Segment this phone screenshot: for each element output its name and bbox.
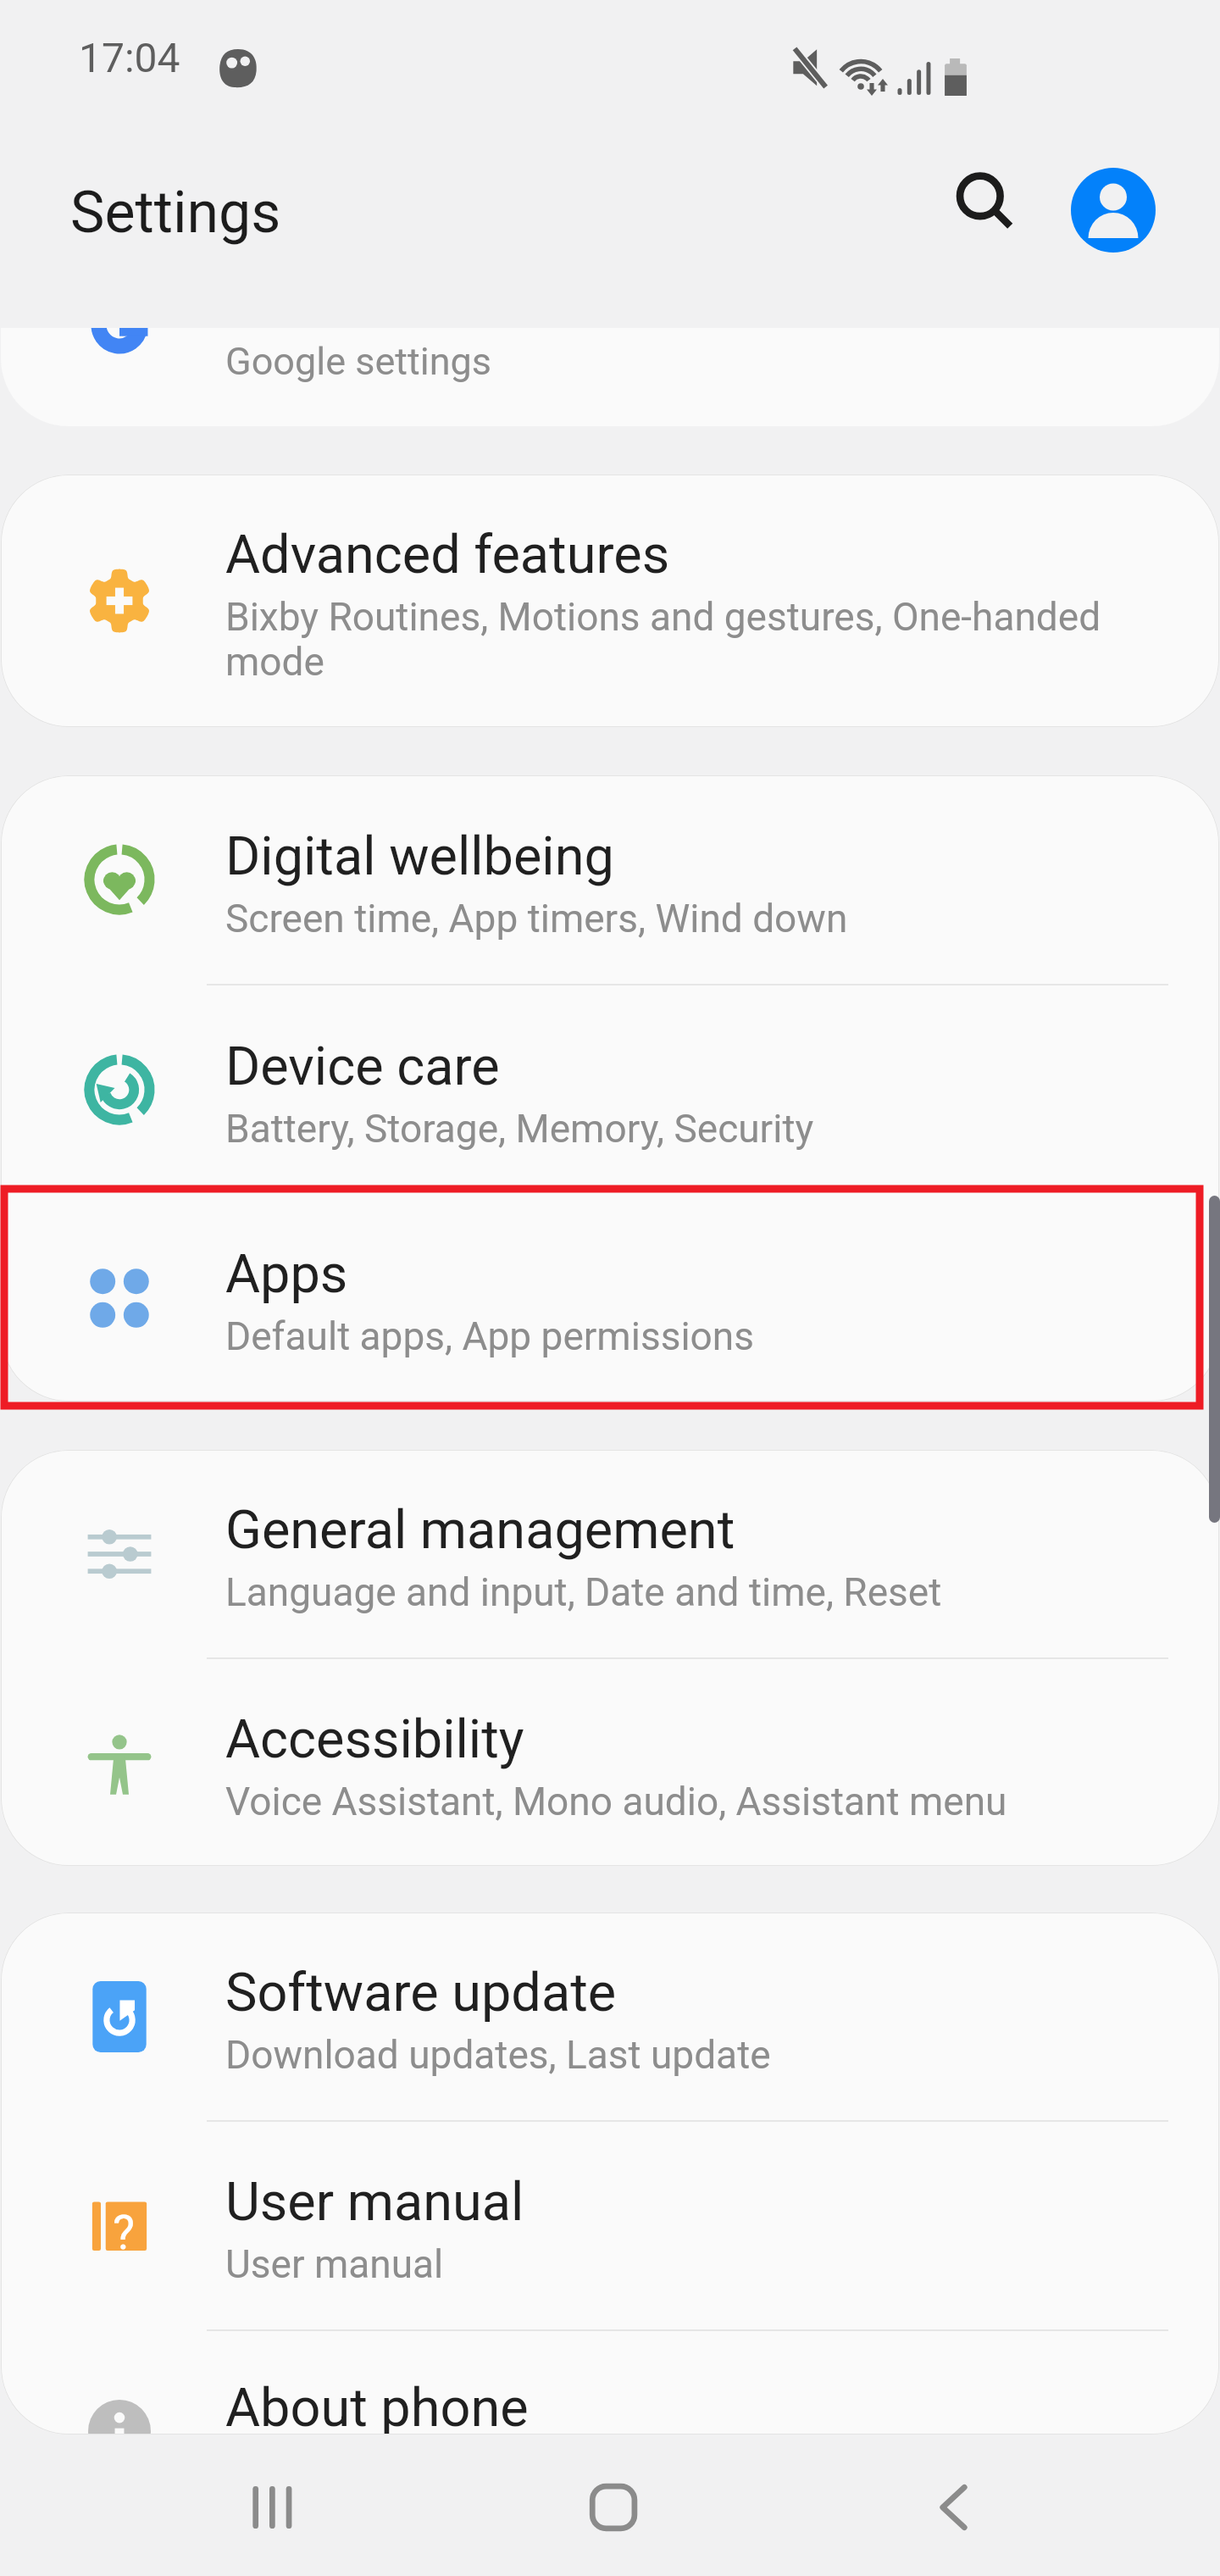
staticText: Bixby Routines, Motions and gestures, On… bbox=[225, 594, 1111, 685]
staticText: Advanced features bbox=[225, 524, 670, 586]
button[interactable]: Account bbox=[1071, 168, 1156, 253]
button[interactable]: Accessibility bbox=[1, 1659, 1219, 1866]
button[interactable]: General management bbox=[1, 1450, 1219, 1657]
staticText: User manual bbox=[225, 2171, 524, 2234]
staticText: General management bbox=[225, 1499, 735, 1562]
button[interactable]: Google settings bbox=[1, 328, 1219, 426]
button[interactable]: Apps bbox=[1, 1194, 1219, 1402]
staticText: Accessibility bbox=[225, 1708, 524, 1771]
button[interactable]: Digital wellbeing bbox=[1, 775, 1219, 984]
staticText: Battery, Storage, Memory, Security bbox=[225, 1106, 814, 1152]
staticText: Settings bbox=[70, 179, 281, 247]
staticText: 17:04 bbox=[79, 34, 180, 81]
staticText: Google settings bbox=[225, 339, 492, 384]
staticText: Apps bbox=[225, 1243, 348, 1306]
staticText: Default apps, App permissions bbox=[225, 1313, 754, 1359]
button[interactable]: Device care bbox=[1, 985, 1219, 1194]
button[interactable]: Advanced features bbox=[1, 475, 1219, 727]
staticText: Digital wellbeing bbox=[225, 825, 614, 888]
staticText: Voice Assistant, Mono audio, Assistant m… bbox=[225, 1779, 1007, 1824]
button[interactable]: About phone bbox=[1, 2331, 1219, 2434]
button[interactable]: Home bbox=[554, 2448, 673, 2567]
button[interactable]: Search bbox=[930, 151, 1032, 253]
staticText: Software update bbox=[225, 1962, 617, 2024]
staticText: Language and input, Date and time, Reset bbox=[225, 1569, 942, 1615]
button[interactable]: Software update bbox=[1, 1913, 1219, 2120]
staticText: User manual bbox=[225, 2241, 444, 2287]
staticText: About phone bbox=[225, 2377, 529, 2434]
button[interactable]: ? bbox=[1, 2122, 1219, 2329]
button[interactable]: Recent apps bbox=[213, 2448, 332, 2567]
staticText: ? bbox=[113, 2206, 135, 2260]
button[interactable]: Back bbox=[894, 2448, 1012, 2567]
staticText: Screen time, App timers, Wind down bbox=[225, 896, 848, 941]
staticText: Device care bbox=[225, 1035, 500, 1098]
staticText: Download updates, Last update bbox=[225, 2032, 771, 2078]
